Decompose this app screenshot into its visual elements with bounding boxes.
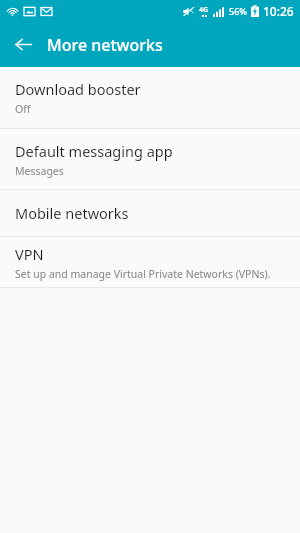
button[interactable]: Download booster — [0, 67, 300, 128]
button[interactable]: Default messaging app — [0, 129, 300, 189]
staticText: Messages — [15, 164, 64, 178]
staticText: 56% — [229, 5, 247, 17]
staticText: Mobile networks — [15, 203, 129, 223]
staticText: VPN — [15, 244, 44, 264]
staticText: Default messaging app — [15, 141, 173, 161]
button[interactable]: Mobile networks — [0, 190, 300, 236]
staticText: Set up and manage Virtual Private Networ… — [15, 267, 271, 281]
button[interactable]: VPN — [0, 237, 300, 287]
staticText: 10:26 — [263, 3, 294, 19]
staticText: More networks — [47, 34, 163, 56]
staticText: Download booster — [15, 79, 141, 99]
button[interactable]: Navigate up — [8, 29, 39, 60]
staticText: 4G — [199, 5, 209, 15]
staticText: Off — [15, 102, 31, 116]
